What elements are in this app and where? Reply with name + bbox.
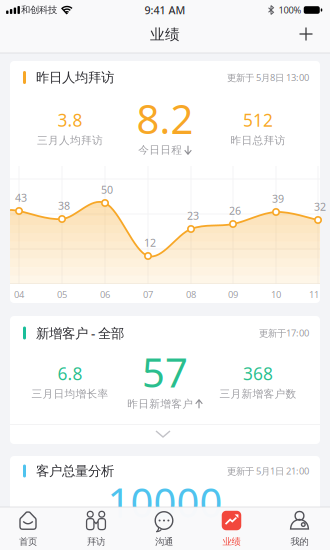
button[interactable]: 我的 [268,508,330,550]
staticText: 业绩 [222,536,240,547]
staticText: 更新于 5月8日 13:00 [227,71,309,84]
staticText: 拜访 [87,536,105,547]
staticText: 10 [271,288,281,301]
staticText: 新增客户 - 全部 [36,324,124,342]
staticText: 06 [100,288,110,301]
staticText: 26 [229,203,241,218]
staticText: 我的 [290,536,308,547]
staticText: 57 [142,345,188,398]
staticText: 三月新增客户数 [219,387,296,400]
button[interactable]: 添加 [292,20,320,48]
staticText: 100% [278,4,301,16]
staticText: 50 [101,182,113,197]
staticText: 业绩 [150,25,180,43]
staticText: 和创科技 [21,4,57,16]
staticText: 07 [143,288,153,301]
staticText: 08 [186,288,196,301]
staticText: 昨日新增客户 [127,397,193,410]
staticText: 昨日总拜访 [230,134,285,147]
staticText: 38 [58,198,70,213]
staticText: 512 [243,108,273,131]
staticText: 今日日程 [138,143,182,156]
staticText: 10000 [107,475,222,528]
staticText: 更新于 5月1日 21:00 [227,465,309,477]
button[interactable]: 沟通 [133,508,195,550]
staticText: 6.8 [57,362,82,385]
staticText: 9:41 AM [144,3,185,17]
staticText: 三月人均拜访 [37,134,103,147]
staticText: 32 [314,199,326,214]
staticText: 39 [272,191,284,206]
staticText: 沟通 [155,536,173,547]
staticText: 3.8 [57,108,82,131]
staticText: 12 [144,235,156,250]
staticText: 368 [243,362,273,385]
button[interactable]: 展开 [141,425,185,443]
staticText: 昨日人均拜访 [36,69,114,86]
staticText: 8.2 [136,92,193,145]
staticText: 首页 [19,536,37,547]
staticText: 04 [14,288,24,301]
staticText: 客户总量分析 [36,463,114,479]
staticText: 09 [228,288,238,301]
button[interactable]: 业绩 [200,508,262,550]
button[interactable]: 拜访 [65,508,127,550]
staticText: 05 [57,288,67,301]
button[interactable]: 首页 [0,508,59,550]
staticText: 43 [15,190,27,205]
staticText: 三月日均增长率 [31,387,108,400]
staticText: 更新于17:00 [259,327,309,339]
staticText: 11 [309,288,319,301]
staticText: 23 [187,208,199,223]
